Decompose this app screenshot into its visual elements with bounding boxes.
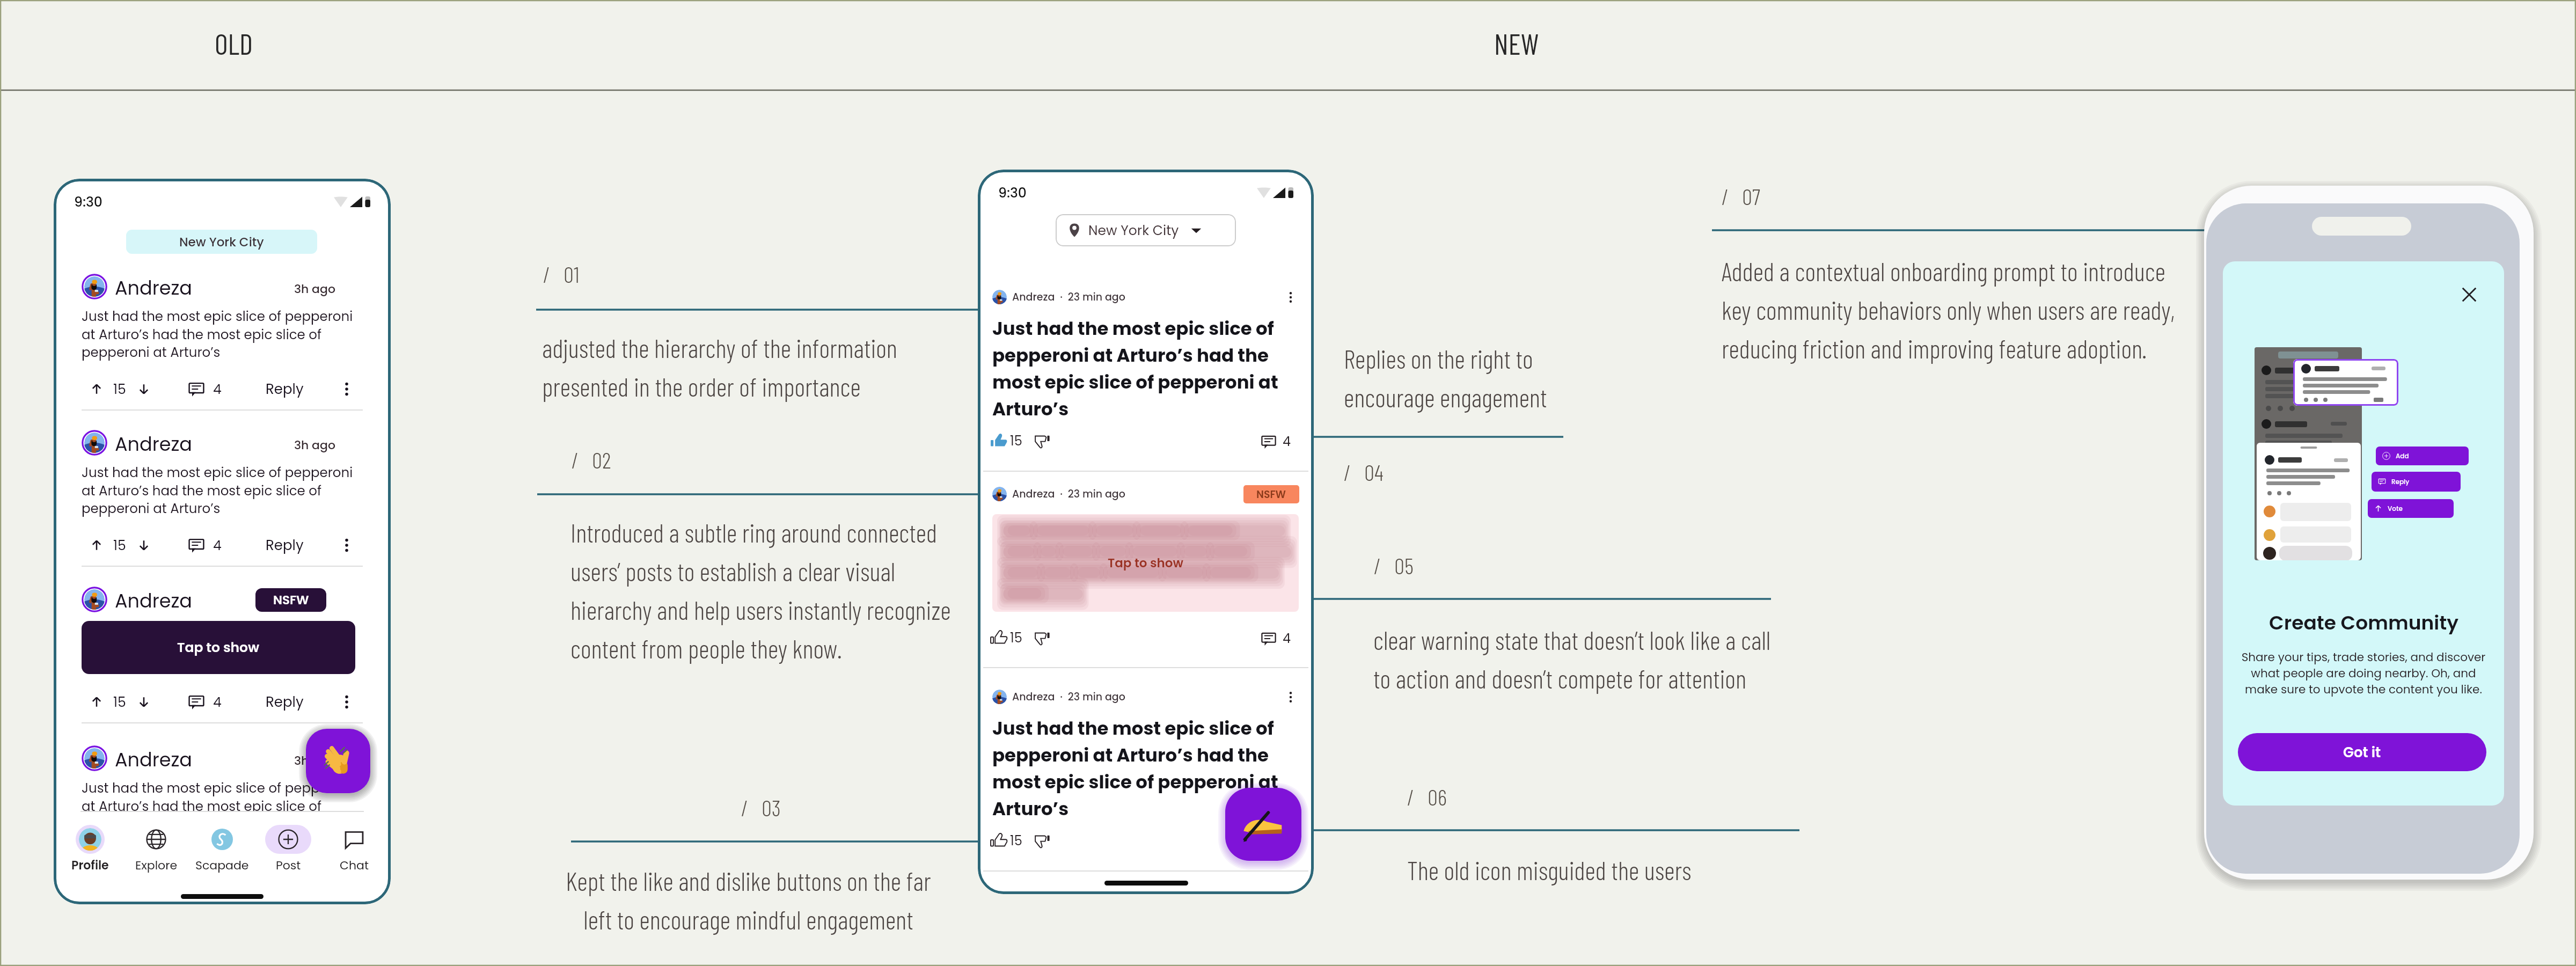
staticText: Added a contextual onboarding prompt to …	[1722, 255, 2175, 364]
staticText: Andreza · 23 min ago	[1012, 690, 1125, 704]
button[interactable]: Downvote	[137, 539, 150, 552]
button[interactable]: Reply	[2372, 472, 2461, 492]
button[interactable]: Reply	[266, 379, 304, 399]
button[interactable]: Close	[2460, 286, 2478, 304]
staticText: Just had the most epic slice of pepperon…	[82, 779, 356, 833]
staticText: Reply	[266, 379, 304, 399]
staticText: Create Community	[2269, 609, 2458, 636]
staticText: Andreza	[115, 275, 192, 301]
staticText: 15	[113, 380, 126, 399]
staticText: Vote	[2388, 504, 2403, 513]
staticText: adjusted the hierarchy of the informatio…	[542, 332, 897, 402]
button[interactable]: Like	[990, 629, 1008, 647]
button[interactable]: Say hi	[306, 729, 370, 793]
staticText: Profile	[71, 857, 109, 874]
button[interactable]: More options	[339, 537, 355, 553]
button[interactable]: Comments	[188, 380, 205, 398]
staticText: New York City	[1088, 221, 1179, 240]
staticText: Chat	[340, 857, 369, 874]
staticText: Just had the most epic slice of pepperon…	[992, 316, 1289, 422]
staticText: Post	[276, 857, 301, 874]
staticText: Explore	[135, 857, 178, 874]
button[interactable]: Upvote	[90, 539, 103, 552]
staticText: 4	[213, 380, 222, 399]
button[interactable]: Tap to show	[992, 514, 1299, 612]
staticText: / 06	[1407, 783, 1447, 810]
button[interactable]: Downvote	[137, 696, 150, 708]
button[interactable]: Comments	[188, 693, 205, 711]
staticText: 9:30	[998, 184, 1027, 202]
button[interactable]: New York City	[1056, 214, 1236, 246]
button[interactable]: Profile	[61, 825, 120, 874]
staticText: Got it	[2343, 743, 2381, 762]
staticText: 15	[1010, 432, 1022, 450]
staticText: 9:30	[74, 193, 103, 211]
button[interactable]: More options	[339, 381, 355, 397]
button[interactable]: More options	[1284, 291, 1297, 304]
staticText: Reply	[266, 536, 304, 555]
button[interactable]: Comments	[1261, 434, 1277, 450]
staticText: Andreza	[115, 588, 192, 614]
staticText: OLD	[215, 26, 253, 61]
button[interactable]: Comments	[188, 537, 205, 554]
button[interactable]: More options	[1284, 691, 1297, 704]
button[interactable]: Post	[259, 825, 318, 874]
button[interactable]: Scapade	[193, 825, 252, 874]
staticText: 4	[1283, 630, 1291, 648]
staticText: 15	[1010, 832, 1022, 850]
button[interactable]: Create post	[1225, 788, 1301, 861]
staticText: / 02	[572, 446, 611, 473]
staticText: 15	[1010, 629, 1022, 647]
staticText: 3h ago	[294, 752, 335, 769]
button[interactable]: Reply	[266, 536, 304, 555]
staticText: 4	[213, 536, 222, 555]
staticText: Andreza · 23 min ago	[1012, 290, 1125, 304]
button[interactable]: NSFW	[1243, 485, 1299, 503]
button[interactable]: Dislike	[1033, 432, 1051, 450]
button[interactable]: Dislike	[1033, 832, 1051, 850]
staticText: 3h ago	[294, 281, 335, 297]
staticText: Replies on the right to encourage engage…	[1344, 343, 1547, 413]
staticText: Reply	[266, 692, 304, 712]
staticText: Andreza · 23 min ago	[1012, 487, 1125, 501]
button[interactable]: Explore	[127, 825, 186, 874]
button[interactable]: Add	[2376, 447, 2469, 465]
staticText: Tap to show	[1108, 554, 1183, 572]
staticText: Introduced a subtle ring around connecte…	[570, 517, 951, 664]
staticText: Andreza	[115, 747, 192, 773]
staticText: Add	[2396, 451, 2409, 460]
button[interactable]: NSFW	[255, 588, 326, 612]
button[interactable]: New York City	[126, 230, 317, 254]
button[interactable]: Like	[990, 832, 1008, 850]
button[interactable]: Reply	[266, 692, 304, 712]
staticText: clear warning state that doesn’t look li…	[1373, 624, 1771, 694]
staticText: Share your tips, trade stories, and disc…	[2239, 649, 2488, 698]
staticText: / 03	[741, 794, 781, 821]
button[interactable]: Tap to show	[82, 621, 355, 674]
staticText: Just had the most epic slice of pepperon…	[82, 307, 356, 361]
staticText: Scapade	[195, 857, 249, 874]
button[interactable]: Got it	[2238, 733, 2486, 771]
button[interactable]: Dislike	[1033, 629, 1051, 647]
button[interactable]: Chat	[325, 825, 384, 874]
button[interactable]: Upvote	[90, 383, 103, 396]
staticText: 3h ago	[294, 437, 335, 453]
staticText: 15	[113, 536, 126, 555]
staticText: Just had the most epic slice of pepperon…	[82, 463, 356, 517]
button[interactable]: More options	[339, 694, 355, 710]
staticText: NSFW	[273, 591, 309, 609]
staticText: NSFW	[1256, 487, 1286, 502]
button[interactable]: Downvote	[137, 383, 150, 396]
staticText: The old icon misguided the users	[1407, 854, 1692, 885]
staticText: New York City	[179, 233, 264, 251]
button[interactable]: Vote	[2368, 499, 2454, 518]
button[interactable]: Comments	[1261, 631, 1277, 647]
staticText: / 01	[543, 260, 580, 287]
staticText: Tap to show	[177, 638, 260, 657]
staticText: / 05	[1374, 552, 1414, 579]
button[interactable]: Like	[990, 432, 1008, 450]
staticText: NEW	[1494, 26, 1539, 61]
staticText: Kept the like and dislike buttons on the…	[566, 865, 931, 935]
button[interactable]: Upvote	[90, 696, 103, 708]
staticText: Just had the most epic slice of pepperon…	[992, 715, 1289, 822]
